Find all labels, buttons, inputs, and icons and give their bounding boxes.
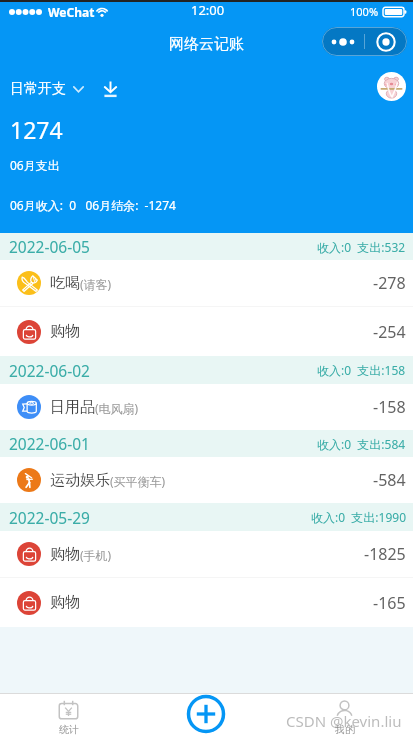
button[interactable]: Close — [365, 27, 407, 56]
staticText: 收入:0 支出:584 — [317, 436, 406, 452]
staticText: -1825 — [364, 543, 406, 565]
button[interactable]: More — [322, 27, 364, 56]
staticText: 2022-06-01 — [9, 433, 90, 454]
staticText: (买平衡车) — [110, 473, 166, 489]
button[interactable]: 购物 — [0, 531, 413, 577]
staticText: 2022-05-29 — [9, 507, 90, 528]
button[interactable]: Profile — [377, 72, 406, 101]
staticText: CSDN @kevin.liu — [286, 711, 402, 731]
staticText: -254 — [373, 321, 406, 343]
staticText: (手机) — [80, 547, 112, 563]
staticText: 购物 — [50, 593, 80, 612]
staticText: -158 — [373, 396, 406, 418]
button[interactable]: 日常开支 — [10, 78, 84, 100]
button[interactable]: 统计 — [0, 693, 137, 737]
button[interactable]: 运动娱乐 — [0, 457, 413, 503]
staticText: WeChat — [48, 4, 95, 20]
staticText: -165 — [373, 592, 406, 614]
button[interactable]: Add record — [137, 693, 275, 737]
staticText: 吃喝 — [50, 274, 80, 293]
staticText: -584 — [373, 469, 406, 491]
staticText: -278 — [373, 272, 406, 294]
staticText: 12:00 — [191, 1, 225, 19]
staticText: (电风扇) — [95, 400, 139, 416]
staticText: 我的 — [335, 723, 355, 736]
button[interactable]: 吃喝 — [0, 260, 413, 306]
staticText: 2022-06-02 — [9, 360, 90, 381]
staticText: 运动娱乐 — [50, 471, 110, 490]
staticText: 统计 — [59, 723, 79, 736]
staticText: 06月支出 — [10, 157, 60, 173]
button[interactable]: 日用品 — [0, 384, 413, 430]
button[interactable]: 购物 — [0, 578, 413, 627]
staticText: 100% — [350, 4, 379, 19]
staticText: 1274 — [10, 114, 63, 145]
staticText: 日用品 — [50, 398, 95, 417]
staticText: 网络云记账 — [169, 35, 244, 54]
staticText: 购物 — [50, 322, 80, 341]
staticText: 收入:0 支出:158 — [317, 362, 406, 378]
staticText: 收入:0 支出:1990 — [311, 509, 406, 525]
button[interactable]: 我的 — [275, 693, 413, 737]
button[interactable]: Download — [98, 77, 122, 101]
staticText: (请客) — [80, 276, 112, 292]
button[interactable]: 购物 — [0, 307, 413, 356]
staticText: 2022-06-05 — [9, 236, 90, 257]
staticText: 日常开支 — [10, 80, 66, 98]
staticText: 06月收入: 0 06月结余: -1274 — [10, 197, 176, 213]
staticText: 收入:0 支出:532 — [317, 239, 406, 255]
staticText: 购物 — [50, 545, 80, 564]
